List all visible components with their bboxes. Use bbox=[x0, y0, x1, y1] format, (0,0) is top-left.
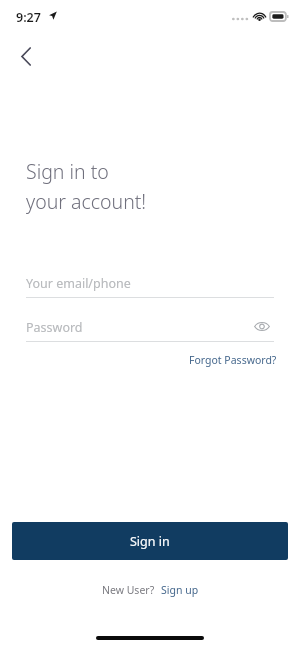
staticText: Sign up bbox=[161, 583, 199, 597]
button[interactable]: Sign in bbox=[12, 522, 288, 560]
staticText: 9:27 bbox=[16, 9, 41, 26]
button[interactable]: Forgot Password? bbox=[188, 352, 278, 368]
staticText: Your email/phone bbox=[26, 275, 131, 292]
staticText: New User? bbox=[102, 583, 155, 597]
staticText: Sign in bbox=[130, 533, 170, 550]
button[interactable]: Password bbox=[26, 312, 274, 342]
staticText: Password bbox=[26, 319, 83, 336]
staticText: Sign in to bbox=[26, 158, 109, 185]
staticText: Forgot Password? bbox=[189, 353, 277, 367]
staticText: your account! bbox=[26, 188, 147, 215]
button[interactable]: Show password bbox=[250, 314, 274, 338]
button[interactable]: Sign up bbox=[161, 583, 199, 597]
button[interactable]: Your email/phone bbox=[26, 268, 274, 298]
button[interactable]: Back bbox=[8, 38, 44, 74]
